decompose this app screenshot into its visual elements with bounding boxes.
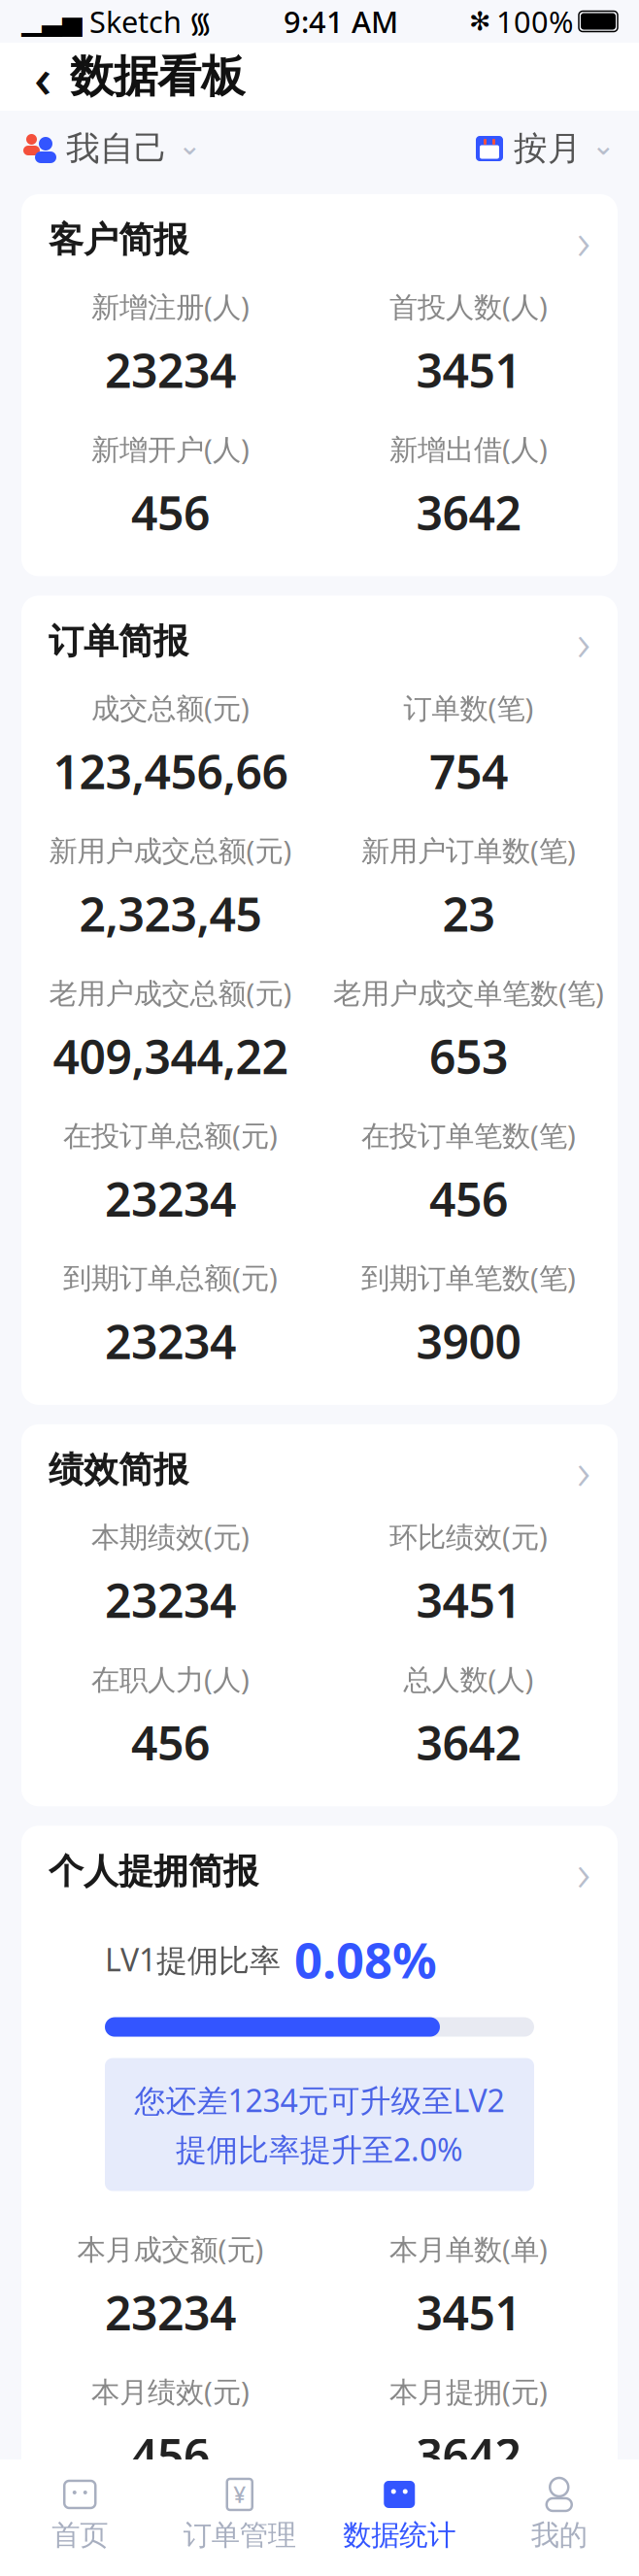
staticText: 23234 bbox=[105, 1168, 236, 1229]
button[interactable]: 我的 bbox=[479, 2469, 639, 2560]
staticText: 3642 bbox=[416, 2424, 521, 2486]
staticText: 在职人力(人) bbox=[91, 1660, 250, 1698]
staticText: 3900 bbox=[416, 1310, 521, 1372]
button[interactable]: 数据统计 bbox=[319, 2469, 479, 2560]
staticText: 新增出借(人) bbox=[389, 430, 548, 468]
staticText: 按月 bbox=[514, 128, 582, 169]
staticText: ⌄ bbox=[178, 129, 202, 161]
button[interactable]: 个人提拥简报 bbox=[21, 1839, 618, 1903]
staticText: 本月成交额(元) bbox=[77, 2230, 264, 2268]
staticText: 100% bbox=[496, 2, 573, 41]
staticText: 绩效简报 bbox=[49, 1449, 188, 1491]
button[interactable]: 订单简报 bbox=[21, 609, 618, 673]
staticText: 老用户成交总额(元) bbox=[49, 974, 292, 1012]
staticText: 提佣比率提升至2.0% bbox=[176, 2128, 463, 2170]
staticText: 653 bbox=[429, 1025, 508, 1087]
staticText: 456 bbox=[131, 481, 210, 543]
staticText: 409,344,22 bbox=[53, 1025, 288, 1087]
staticText: 成交总额(元) bbox=[91, 689, 250, 727]
staticText: 环比绩效(元) bbox=[389, 1518, 548, 1555]
button[interactable]: 客户简报 bbox=[21, 208, 618, 272]
staticText: 本月绩效(元) bbox=[91, 2372, 250, 2410]
staticText: 首页 bbox=[52, 2518, 108, 2553]
staticText: 首投人数(人) bbox=[389, 287, 548, 325]
staticText: 我的 bbox=[531, 2518, 587, 2553]
staticText: 订单管理 bbox=[183, 2518, 296, 2553]
staticText: › bbox=[577, 607, 590, 676]
staticText: 3642 bbox=[416, 1711, 521, 1773]
staticText: 456 bbox=[131, 1711, 210, 1773]
staticText: 本月提拥(元) bbox=[389, 2372, 548, 2410]
staticText: 456 bbox=[131, 2424, 210, 2486]
staticText: 本月单数(单) bbox=[389, 2230, 548, 2268]
staticText: 3451 bbox=[416, 1569, 521, 1631]
staticText: 您还差1234元可升级至LV2 bbox=[135, 2079, 504, 2121]
staticText: ¥ bbox=[233, 2480, 246, 2509]
staticText: LV1提佣比率 bbox=[105, 1939, 281, 1980]
staticText: ᯾ bbox=[188, 2, 213, 40]
staticText: 2,323,45 bbox=[79, 883, 262, 944]
staticText: › bbox=[577, 205, 590, 274]
staticText: 客户简报 bbox=[49, 218, 188, 261]
staticText: 我自己 bbox=[66, 128, 168, 169]
staticText: › bbox=[577, 1436, 590, 1504]
staticText: 数据看板 bbox=[70, 50, 245, 104]
staticText: 订单简报 bbox=[49, 620, 188, 663]
staticText: 在投订单笔数(笔) bbox=[361, 1116, 576, 1154]
button[interactable]: 返回 bbox=[16, 48, 70, 106]
staticText: 新用户成交总额(元) bbox=[49, 831, 292, 869]
button[interactable]: 按月 bbox=[475, 128, 616, 169]
staticText: 0.08% bbox=[294, 1927, 437, 1992]
staticText: 到期订单笔数(笔) bbox=[361, 1259, 576, 1296]
staticText: 9:41 AM bbox=[284, 2, 398, 41]
staticText: 本期绩效(元) bbox=[91, 1518, 250, 1555]
staticText: 23234 bbox=[105, 1569, 236, 1631]
staticText: Sketch bbox=[89, 2, 182, 41]
staticText: 到期订单总额(元) bbox=[63, 1259, 278, 1296]
staticText: 3451 bbox=[416, 339, 521, 401]
staticText: 23234 bbox=[105, 2281, 236, 2343]
staticText: 订单数(笔) bbox=[404, 689, 534, 727]
staticText: 新用户订单数(笔) bbox=[361, 831, 576, 869]
staticText: 新增开户(人) bbox=[91, 430, 250, 468]
staticText: › bbox=[577, 1837, 590, 1906]
staticText: 新增注册(人) bbox=[91, 287, 250, 325]
button[interactable]: 绩效简报 bbox=[21, 1438, 618, 1502]
staticText: 总人数(人) bbox=[404, 1660, 534, 1698]
button[interactable]: 我自己 bbox=[23, 128, 202, 169]
staticText: ▁▃▅ bbox=[21, 7, 83, 36]
staticText: 456 bbox=[429, 1168, 508, 1229]
staticText: ✻ bbox=[469, 7, 490, 36]
staticText: 数据统计 bbox=[343, 2518, 456, 2553]
staticText: 老用户成交单笔数(笔) bbox=[333, 974, 604, 1012]
staticText: 在投订单总额(元) bbox=[63, 1116, 278, 1154]
button[interactable]: ¥ bbox=[160, 2469, 319, 2560]
staticText: 个人提拥简报 bbox=[49, 1850, 258, 1893]
staticText: 23234 bbox=[105, 339, 236, 401]
staticText: ⌄ bbox=[591, 129, 616, 161]
button[interactable]: 首页 bbox=[0, 2469, 160, 2560]
staticText: 3642 bbox=[416, 481, 521, 543]
staticText: 754 bbox=[429, 740, 508, 802]
staticText: 123,456,66 bbox=[53, 740, 288, 802]
staticText: 23 bbox=[442, 883, 495, 944]
staticText: ‹ bbox=[34, 41, 51, 113]
staticText: 3451 bbox=[416, 2281, 521, 2343]
staticText: 23234 bbox=[105, 1310, 236, 1372]
